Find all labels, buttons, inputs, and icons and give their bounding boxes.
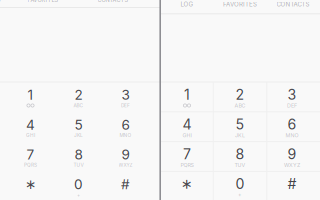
button[interactable]: 7 bbox=[160, 142, 214, 171]
staticText: CONTACTS bbox=[97, 0, 128, 3]
button[interactable]: 1 bbox=[4, 82, 57, 112]
staticText: FAVORITES bbox=[27, 0, 58, 3]
button[interactable]: # bbox=[99, 171, 152, 200]
staticText: GHI bbox=[26, 132, 35, 138]
staticText: JKL bbox=[74, 132, 83, 138]
staticText: 7 bbox=[26, 146, 34, 163]
staticText: ∗ bbox=[181, 176, 193, 192]
staticText: 1 bbox=[184, 86, 190, 103]
button[interactable]: 8 bbox=[213, 142, 267, 171]
staticText: 8 bbox=[235, 145, 244, 163]
staticText: MNO bbox=[119, 132, 131, 138]
button[interactable]: 9 bbox=[265, 142, 319, 171]
staticText: WXYZ bbox=[284, 162, 300, 168]
staticText: 1 bbox=[27, 87, 33, 103]
staticText: JKL bbox=[235, 132, 245, 139]
staticText: WXYZ bbox=[118, 162, 132, 168]
staticText: 3 bbox=[121, 87, 129, 103]
staticText: MNO bbox=[285, 132, 298, 139]
button[interactable]: 9 bbox=[99, 142, 152, 171]
staticText: GHI bbox=[182, 132, 191, 139]
button[interactable]: 0 bbox=[213, 171, 267, 200]
staticText: 6 bbox=[287, 116, 296, 133]
button[interactable]: # bbox=[265, 171, 319, 200]
staticText: 3 bbox=[287, 86, 296, 103]
staticText: LOG bbox=[180, 1, 193, 8]
staticText: # bbox=[121, 176, 130, 193]
button[interactable]: FAVORITES bbox=[16, 0, 70, 6]
button[interactable]: 4 bbox=[4, 112, 57, 142]
button[interactable]: 5 bbox=[213, 112, 267, 142]
staticText: 9 bbox=[287, 145, 296, 163]
staticText: 5 bbox=[74, 116, 82, 133]
staticText: 6 bbox=[121, 116, 129, 133]
button[interactable]: 1 bbox=[160, 82, 214, 112]
button[interactable]: 3 bbox=[99, 82, 152, 112]
staticText: PQRS bbox=[24, 162, 37, 168]
staticText: FAVORITES bbox=[223, 1, 257, 8]
button[interactable]: LOG bbox=[160, 0, 214, 11]
button[interactable]: 2 bbox=[52, 82, 105, 112]
staticText: 2 bbox=[74, 87, 82, 103]
staticText: + bbox=[238, 192, 242, 198]
button[interactable]: 7 bbox=[4, 142, 57, 171]
button[interactable]: ∗ bbox=[160, 171, 214, 200]
button[interactable]: 5 bbox=[52, 112, 105, 142]
staticText: 0 bbox=[74, 176, 83, 193]
staticText: 2 bbox=[235, 86, 244, 103]
button[interactable]: 6 bbox=[99, 112, 152, 142]
staticText: 0 bbox=[235, 175, 244, 192]
button[interactable]: 3 bbox=[265, 82, 319, 112]
staticText: 4 bbox=[26, 116, 35, 133]
staticText: # bbox=[287, 175, 296, 192]
staticText: 7 bbox=[183, 145, 191, 163]
staticText: TUV bbox=[73, 162, 83, 168]
button[interactable]: CONTACTS bbox=[86, 0, 140, 6]
button[interactable]: CONTACTS bbox=[266, 0, 320, 11]
staticText: PQRS bbox=[180, 162, 193, 168]
staticText: DEF bbox=[287, 102, 297, 109]
button[interactable]: 6 bbox=[265, 112, 319, 142]
staticText: + bbox=[77, 192, 80, 198]
staticText: TUV bbox=[234, 162, 245, 168]
staticText: ABC bbox=[73, 103, 83, 108]
button[interactable]: FAVORITES bbox=[213, 0, 267, 11]
staticText: 8 bbox=[74, 146, 82, 163]
staticText: 4 bbox=[182, 116, 191, 133]
staticText: ABC bbox=[234, 102, 245, 109]
button[interactable]: 4 bbox=[160, 112, 214, 142]
staticText: 5 bbox=[235, 116, 244, 133]
button[interactable]: 8 bbox=[52, 142, 105, 171]
button[interactable]: 0 bbox=[52, 171, 105, 200]
button[interactable]: LOG bbox=[0, 0, 22, 6]
staticText: CONTACTS bbox=[276, 1, 309, 8]
staticText: DEF bbox=[121, 103, 130, 108]
button[interactable]: 2 bbox=[213, 82, 267, 112]
button[interactable]: ∗ bbox=[4, 171, 57, 200]
staticText: ∗ bbox=[25, 176, 36, 192]
staticText: 9 bbox=[121, 146, 129, 163]
